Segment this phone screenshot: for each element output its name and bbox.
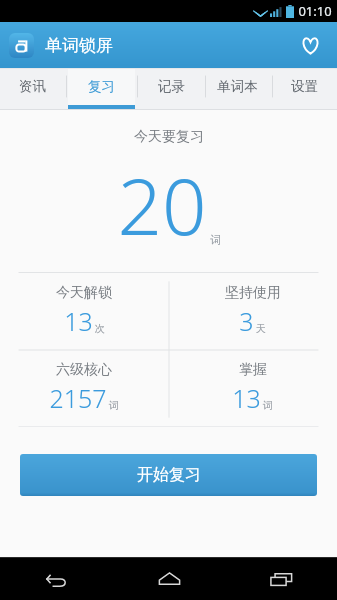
button[interactable]: 掌握 [168, 349, 337, 427]
staticText: 13 [232, 381, 261, 415]
button[interactable]: 设置 [271, 68, 337, 110]
button[interactable]: 坚持使用 [168, 272, 337, 349]
button[interactable]: Favorite [293, 28, 327, 62]
button[interactable]: 开始复习 [20, 454, 317, 496]
staticText: 开始复习 [137, 465, 201, 485]
button[interactable]: 资讯 [0, 68, 65, 110]
staticText: 今天要复习 [134, 128, 204, 146]
staticText: 3 [239, 304, 254, 338]
button[interactable]: 今天解锁 [0, 272, 168, 349]
button[interactable]: Home [113, 557, 225, 600]
button[interactable]: Back [0, 557, 113, 600]
staticText: 单词本 [217, 78, 258, 95]
staticText: 掌握 [239, 361, 267, 379]
staticText: 资讯 [19, 78, 46, 95]
staticText: 坚持使用 [225, 284, 281, 302]
staticText: 01:10 [298, 2, 332, 20]
button[interactable]: 记录 [138, 68, 204, 110]
button[interactable]: 六级核心 [0, 349, 168, 427]
staticText: 词 [210, 233, 221, 247]
staticText: 次 [95, 322, 105, 335]
button[interactable]: 单词本 [204, 68, 270, 110]
staticText: 单词锁屏 [45, 35, 113, 56]
button[interactable]: 复习 [68, 68, 134, 110]
staticText: 复习 [88, 78, 115, 95]
staticText: 20 [117, 152, 207, 258]
staticText: 六级核心 [56, 361, 112, 379]
staticText: 2157 [49, 381, 107, 415]
button[interactable]: Recents [225, 557, 337, 600]
staticText: 记录 [158, 78, 185, 95]
staticText: 今天解锁 [56, 284, 112, 302]
staticText: 词 [109, 399, 119, 412]
staticText: 设置 [291, 78, 318, 95]
staticText: 13 [64, 304, 93, 338]
staticText: 天 [256, 322, 266, 335]
staticText: 词 [263, 399, 273, 412]
button[interactable]: App logo [9, 33, 34, 58]
